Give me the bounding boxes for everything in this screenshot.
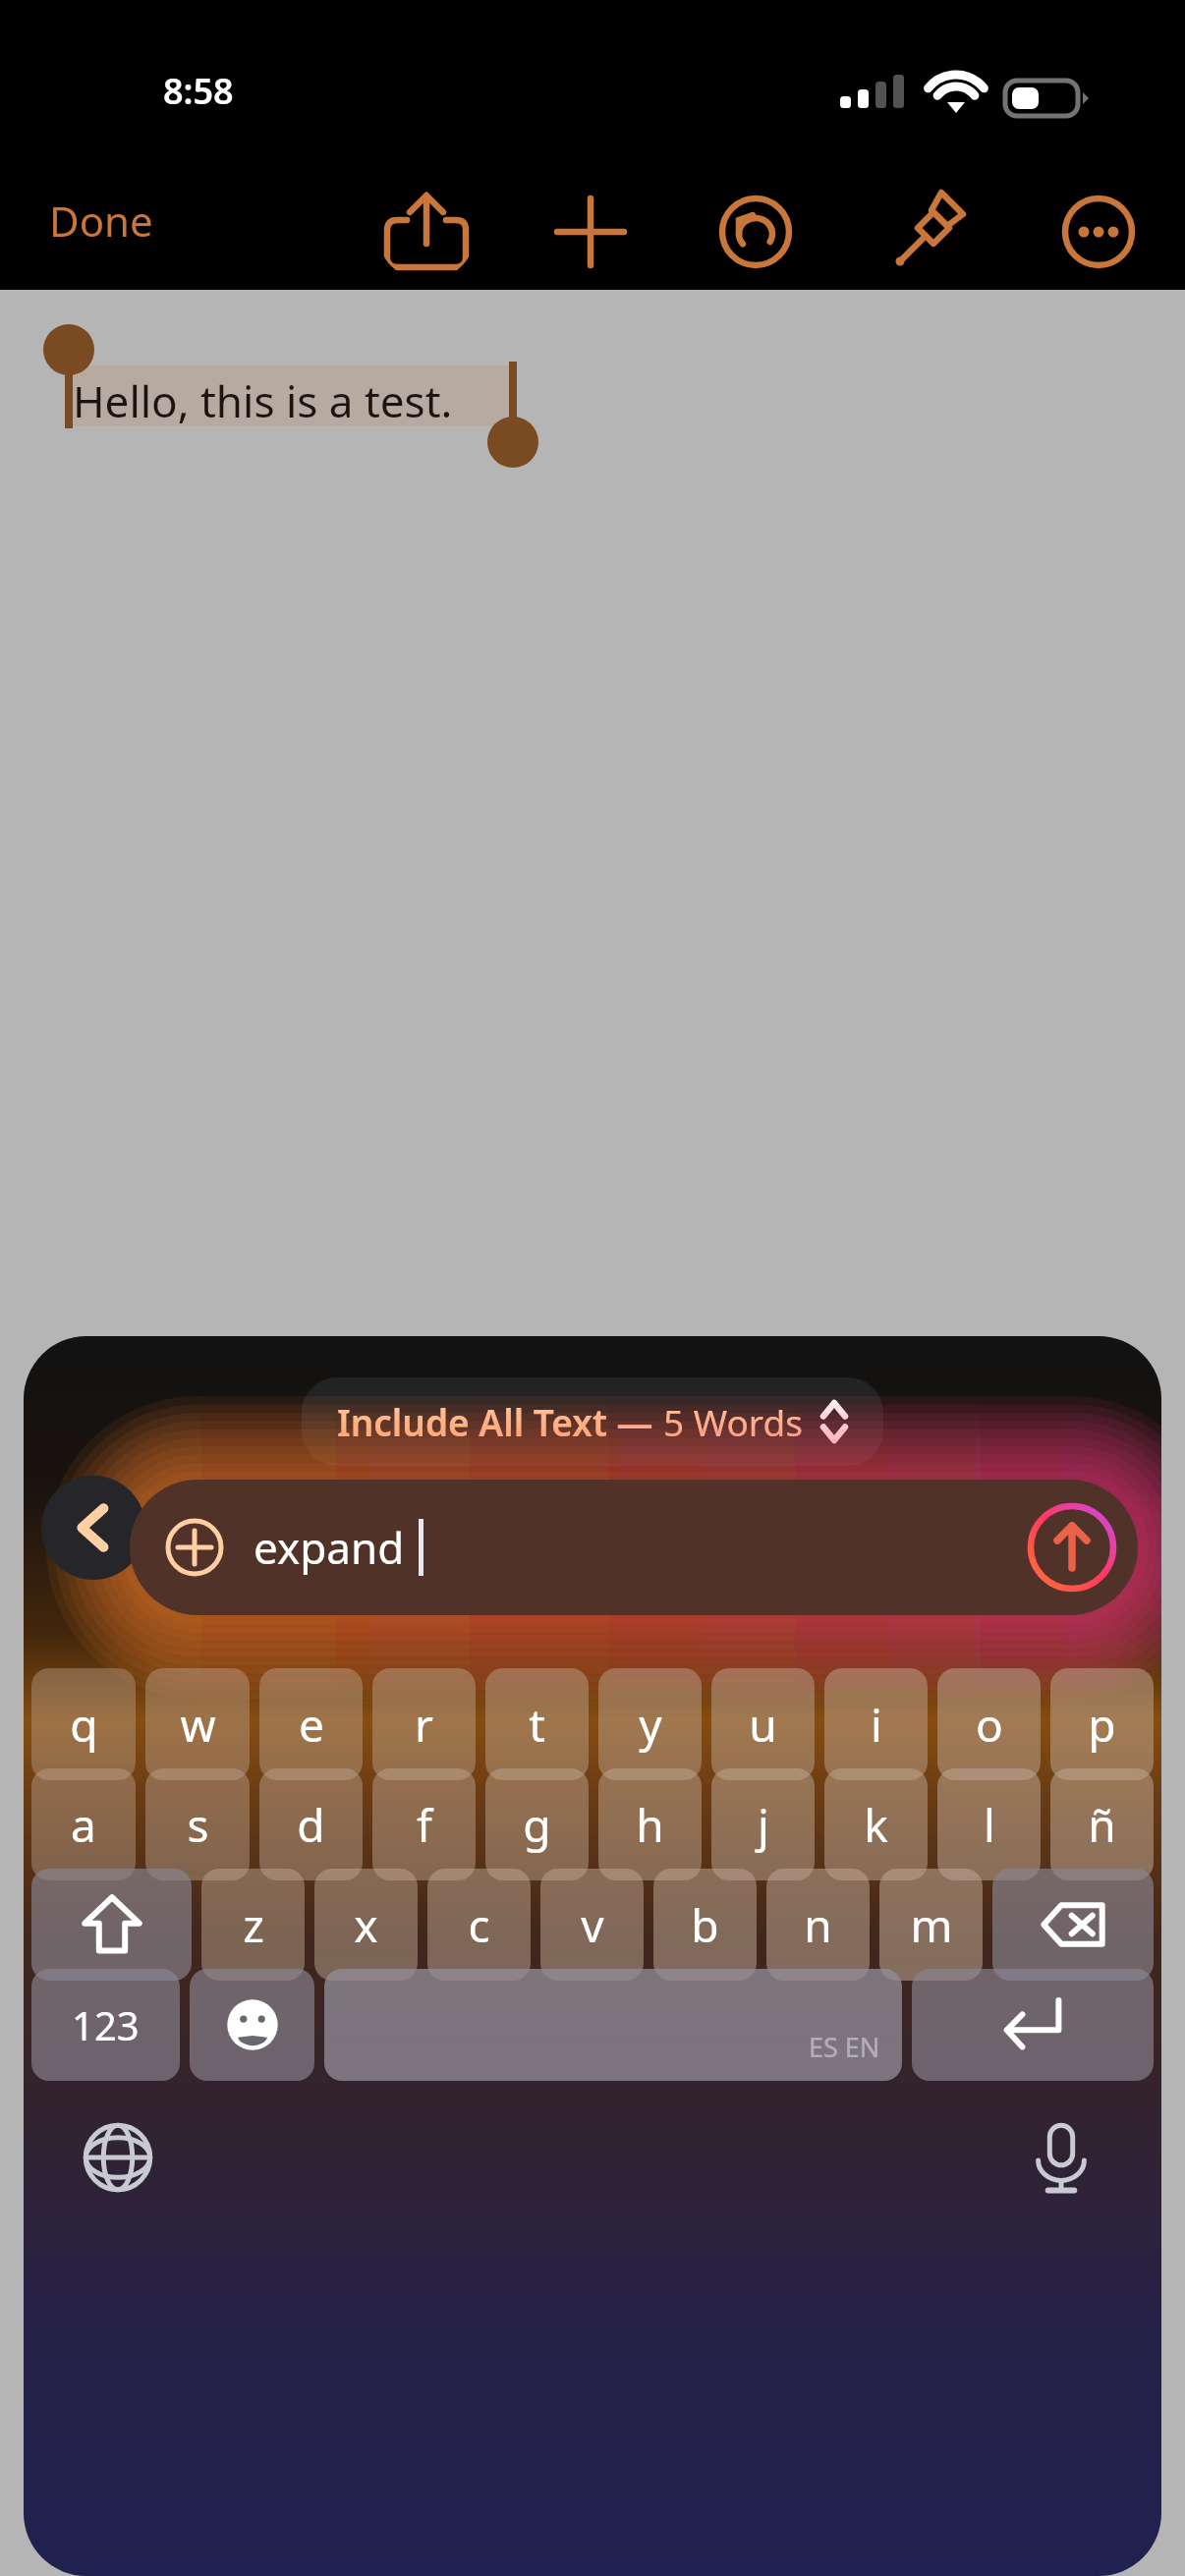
staticText: w <box>180 1694 216 1756</box>
button[interactable]: v <box>540 1869 644 1981</box>
button[interactable]: n <box>766 1869 870 1981</box>
button[interactable]: Delete <box>992 1869 1154 1981</box>
staticText: 123 <box>72 1998 140 2051</box>
button[interactable]: q <box>31 1668 136 1780</box>
button[interactable]: w <box>145 1668 250 1780</box>
button[interactable]: expand <box>130 1480 1138 1615</box>
staticText: c <box>468 1894 490 1956</box>
staticText: k <box>864 1794 888 1856</box>
button[interactable]: Dictate <box>1012 2108 1110 2207</box>
staticText: r <box>415 1694 433 1756</box>
button[interactable]: p <box>1050 1668 1154 1780</box>
button[interactable]: Return <box>912 1969 1154 2081</box>
staticText: o <box>976 1694 1003 1756</box>
staticText: Done <box>49 193 153 249</box>
staticText: d <box>297 1794 325 1856</box>
button[interactable]: l <box>937 1768 1041 1880</box>
staticText: g <box>523 1794 551 1856</box>
staticText: s <box>187 1794 209 1856</box>
button[interactable]: t <box>485 1668 589 1780</box>
button[interactable]: x <box>314 1869 418 1981</box>
staticText: m <box>910 1894 953 1956</box>
button[interactable]: ñ <box>1050 1768 1154 1880</box>
staticText: 5 Words <box>663 1397 803 1446</box>
staticText: ñ <box>1088 1794 1116 1856</box>
staticText: expand <box>254 1518 405 1577</box>
button[interactable]: m <box>879 1869 983 1981</box>
staticText: x <box>354 1894 378 1956</box>
staticText: p <box>1088 1694 1116 1756</box>
button[interactable]: i <box>824 1668 928 1780</box>
staticText: j <box>758 1794 769 1856</box>
button[interactable]: e <box>259 1668 363 1780</box>
button[interactable]: Done <box>31 183 171 258</box>
button[interactable]: d <box>259 1768 363 1880</box>
staticText: l <box>984 1794 995 1856</box>
button[interactable]: u <box>711 1668 815 1780</box>
button[interactable]: Shift <box>31 1869 192 1981</box>
staticText: i <box>871 1694 882 1756</box>
button[interactable]: Emoji <box>190 1969 314 2081</box>
button[interactable]: y <box>598 1668 702 1780</box>
staticText: a <box>71 1794 96 1856</box>
staticText: h <box>636 1794 664 1856</box>
staticText: u <box>749 1694 777 1756</box>
staticText: f <box>417 1794 432 1856</box>
staticText: b <box>691 1894 719 1956</box>
button[interactable]: f <box>372 1768 476 1880</box>
button[interactable]: b <box>653 1869 757 1981</box>
button[interactable]: Back <box>41 1476 145 1580</box>
button[interactable]: h <box>598 1768 702 1880</box>
button[interactable]: More options <box>1049 183 1148 281</box>
staticText: z <box>243 1894 264 1956</box>
button[interactable]: k <box>824 1768 928 1880</box>
button[interactable]: ES EN <box>324 1969 902 2081</box>
button[interactable]: Markup <box>880 183 979 281</box>
staticText: Hello, this is a test. <box>73 371 453 430</box>
button[interactable]: Change keyboard <box>69 2108 167 2207</box>
button[interactable]: 123 <box>31 1969 180 2081</box>
staticText: 8:58 <box>163 67 234 115</box>
staticText: q <box>70 1694 98 1756</box>
button[interactable]: s <box>145 1768 250 1880</box>
staticText: e <box>299 1694 324 1756</box>
button[interactable]: Send <box>1024 1499 1120 1596</box>
button[interactable]: r <box>372 1668 476 1780</box>
staticText: Include All Text — <box>337 1397 653 1446</box>
button[interactable]: Share <box>377 183 476 281</box>
button[interactable]: c <box>427 1869 531 1981</box>
button[interactable]: Undo <box>706 183 805 281</box>
button[interactable]: j <box>711 1768 815 1880</box>
button[interactable]: g <box>485 1768 589 1880</box>
button[interactable]: z <box>201 1869 305 1981</box>
staticText: n <box>804 1894 832 1956</box>
staticText: ES EN <box>809 2029 880 2065</box>
button[interactable]: Include All Text — <box>302 1377 883 1466</box>
button[interactable]: o <box>937 1668 1041 1780</box>
staticText: y <box>639 1694 662 1756</box>
button[interactable]: Add <box>541 183 640 281</box>
staticText: v <box>581 1894 604 1956</box>
button[interactable]: a <box>31 1768 136 1880</box>
staticText: t <box>529 1694 545 1756</box>
